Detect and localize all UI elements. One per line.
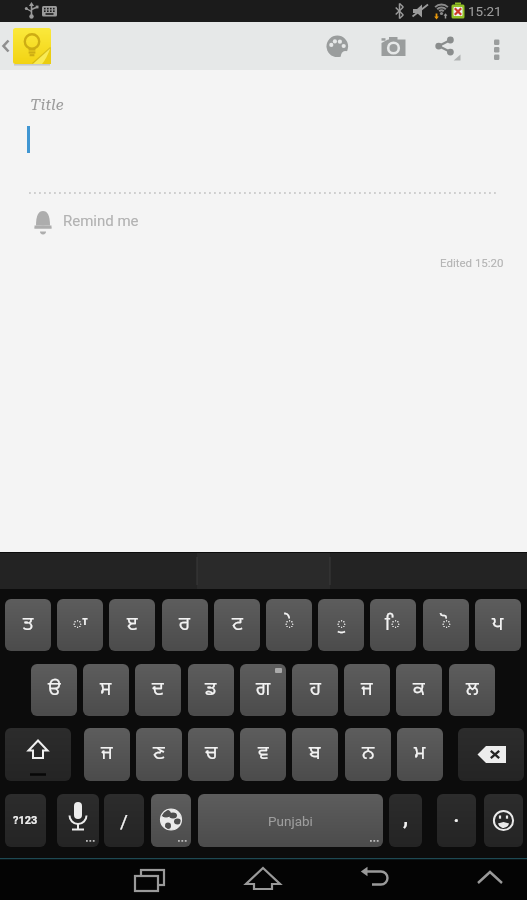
staticText: Edited 15:20 — [440, 256, 504, 269]
staticText: ਮ — [414, 742, 426, 767]
staticText: Punjabi — [268, 813, 313, 829]
staticText: Title — [30, 96, 64, 114]
staticText: ਵ — [258, 742, 269, 767]
button[interactable]: ਵ — [240, 728, 286, 781]
button[interactable]: / — [104, 794, 144, 847]
staticText: ◌ੇ — [284, 613, 295, 638]
button[interactable]: ਜ — [84, 728, 130, 781]
staticText: . — [453, 798, 460, 828]
button[interactable] — [466, 858, 514, 900]
staticText: ?123 — [13, 814, 38, 827]
staticText: 15:21 — [468, 3, 502, 19]
staticText: ਜ — [101, 742, 113, 767]
button[interactable] — [316, 22, 360, 70]
staticText: ਰ — [179, 613, 191, 638]
staticText: ਨ — [362, 742, 375, 767]
button[interactable]: ◌ੋ — [423, 599, 469, 651]
staticText: ◌ਿ — [385, 613, 401, 638]
button[interactable]: ?123 — [5, 794, 46, 847]
staticText: ਣ — [153, 742, 165, 767]
staticText: ◌ਾ — [72, 613, 88, 638]
staticText: ਡ — [205, 678, 217, 703]
button[interactable]: Remind me — [20, 203, 510, 243]
button[interactable] — [368, 22, 412, 70]
button[interactable]: ਡ — [188, 664, 234, 716]
button[interactable]: ਟ — [214, 599, 260, 651]
button[interactable] — [0, 22, 56, 70]
button[interactable]: ਪ — [475, 599, 521, 651]
button[interactable]: Punjabi — [198, 794, 383, 847]
button[interactable] — [57, 794, 99, 847]
button[interactable] — [151, 794, 191, 847]
button[interactable]: ਨ — [345, 728, 391, 781]
staticText: ◌ੋ — [441, 613, 452, 638]
staticText: ਟ — [232, 613, 243, 638]
staticText: ਤ — [23, 613, 34, 638]
staticText: ਚ — [205, 742, 218, 767]
button[interactable]: ਲ — [449, 664, 495, 716]
button[interactable] — [480, 22, 516, 70]
button[interactable]: ◌ੁ — [318, 599, 364, 651]
button[interactable] — [424, 22, 470, 70]
button[interactable]: . — [437, 794, 476, 847]
button[interactable] — [239, 858, 287, 900]
staticText: , — [403, 801, 409, 831]
staticText: ਹ — [310, 678, 321, 703]
staticText: ੲ — [127, 613, 138, 638]
button[interactable]: ◌ੇ — [266, 599, 312, 651]
button[interactable] — [458, 728, 524, 781]
button[interactable]: ਤ — [5, 599, 51, 651]
button[interactable]: ◌ਾ — [57, 599, 103, 651]
button[interactable]: ਸ — [83, 664, 129, 716]
staticText: ਜ — [361, 678, 373, 703]
button[interactable]: ਣ — [136, 728, 182, 781]
staticText: ਸ — [100, 678, 112, 703]
button[interactable]: ਹ — [292, 664, 338, 716]
staticText: ਪ — [492, 613, 504, 638]
button[interactable]: ਬ — [292, 728, 338, 781]
button[interactable]: ਰ — [162, 599, 208, 651]
staticText: ਕ — [413, 678, 425, 703]
button[interactable] — [351, 858, 399, 900]
staticText: ◌ੁ — [336, 613, 347, 638]
button[interactable]: ਚ — [188, 728, 234, 781]
staticText: ਬ — [309, 742, 321, 767]
staticText: / — [120, 810, 128, 832]
button[interactable]: ◌ਿ — [370, 599, 416, 651]
button[interactable]: ਮ — [397, 728, 443, 781]
button[interactable]: ੲ — [109, 599, 155, 651]
button[interactable]: ਜ — [344, 664, 390, 716]
button[interactable]: ਦ — [135, 664, 181, 716]
button[interactable] — [484, 794, 523, 847]
button[interactable]: , — [389, 794, 422, 847]
staticText: ਦ — [152, 678, 164, 703]
staticText: ਗ — [256, 678, 271, 703]
button[interactable]: ਗ — [240, 664, 286, 716]
staticText: ਲ — [466, 678, 479, 703]
staticText: ੳ — [48, 678, 61, 703]
button[interactable]: ੳ — [31, 664, 77, 716]
staticText: Remind me — [63, 212, 139, 230]
button[interactable]: ਕ — [396, 664, 442, 716]
button[interactable] — [127, 858, 175, 900]
button[interactable] — [5, 728, 71, 781]
